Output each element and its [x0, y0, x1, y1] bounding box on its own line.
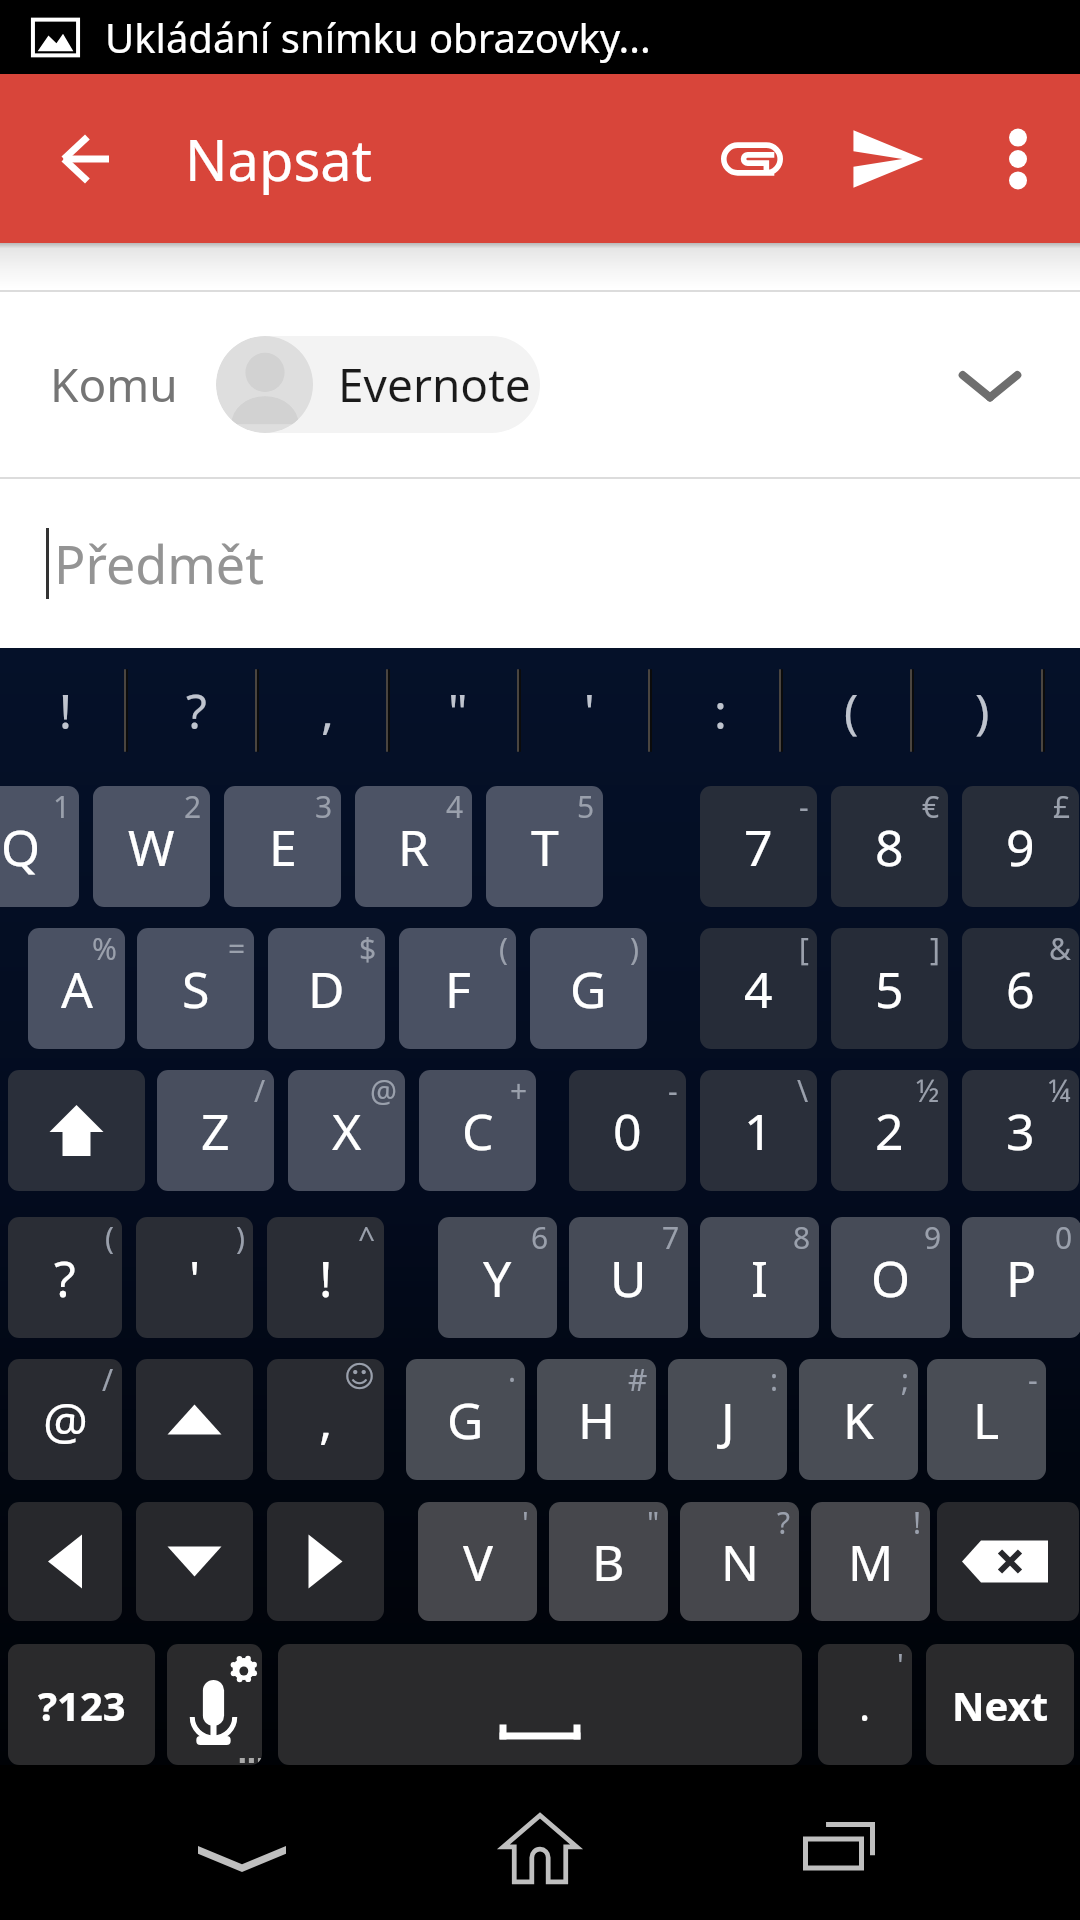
button[interactable]: , — [265, 648, 389, 773]
staticText: ^ — [358, 1217, 376, 1258]
button[interactable]: \ — [700, 1070, 817, 1191]
button[interactable]: 8 — [700, 1217, 819, 1338]
button[interactable]: ' — [418, 1502, 537, 1621]
button[interactable]: 3 — [224, 786, 341, 907]
button[interactable]: shift — [8, 1070, 145, 1191]
button[interactable]: ?123 — [8, 1644, 155, 1765]
staticText: , — [319, 1386, 333, 1454]
button[interactable]: ! — [3, 648, 127, 773]
button[interactable]: ? — [680, 1502, 799, 1621]
button[interactable]: ! — [811, 1502, 930, 1621]
button[interactable]: % — [28, 928, 125, 1049]
button[interactable]: space — [278, 1644, 802, 1765]
staticText: ! — [319, 1244, 333, 1312]
button[interactable]: £ — [962, 786, 1079, 907]
staticText: + — [510, 1070, 528, 1111]
button[interactable]: Attach — [684, 74, 820, 243]
staticText: 3 — [315, 786, 333, 827]
button[interactable]: 6 — [438, 1217, 557, 1338]
button[interactable]: # — [537, 1359, 656, 1480]
button[interactable]: : — [658, 648, 782, 773]
staticText: O — [871, 1244, 911, 1312]
staticText: @ — [370, 1070, 397, 1111]
staticText: ? — [777, 1502, 791, 1543]
button[interactable]: 2 — [93, 786, 210, 907]
staticText: ¼ — [1048, 1070, 1071, 1111]
staticText: / — [254, 1070, 266, 1111]
staticText: 8 — [875, 813, 904, 881]
staticText: 3 — [1006, 1097, 1035, 1165]
staticText: 0 — [613, 1097, 642, 1165]
staticText: 4 — [744, 955, 773, 1023]
button[interactable]: - — [927, 1359, 1046, 1480]
button[interactable]: $ — [268, 928, 385, 1049]
button[interactable]: Hide keyboard — [155, 1765, 330, 1920]
button[interactable]: " — [549, 1502, 668, 1621]
button[interactable]: down — [136, 1502, 253, 1621]
button[interactable]: Home — [450, 1765, 630, 1920]
button[interactable]: 7 — [569, 1217, 688, 1338]
button[interactable]: 4 — [355, 786, 472, 907]
button[interactable]: ) — [136, 1217, 253, 1338]
button[interactable]: ( — [399, 928, 516, 1049]
button[interactable]: ¼ — [962, 1070, 1079, 1191]
staticText: 6 — [531, 1217, 549, 1258]
button[interactable]: - — [700, 786, 817, 907]
button[interactable]: ' — [818, 1644, 912, 1765]
staticText: " — [647, 1502, 660, 1543]
button[interactable]: left — [8, 1502, 122, 1621]
button[interactable]: : — [668, 1359, 787, 1480]
staticText: Q — [1, 813, 41, 881]
button[interactable]: More options — [956, 74, 1080, 243]
staticText: · — [508, 1359, 517, 1400]
button[interactable]: 1 — [0, 786, 79, 907]
staticText: P — [1006, 1244, 1037, 1312]
button[interactable]: Send — [820, 74, 956, 243]
button[interactable]: Evernote — [216, 336, 540, 433]
button[interactable]: = — [137, 928, 254, 1049]
button[interactable]: / — [8, 1359, 122, 1480]
button[interactable]: up — [136, 1359, 253, 1480]
button[interactable]: Recent apps — [760, 1765, 940, 1920]
button[interactable]: € — [831, 786, 948, 907]
button[interactable]: mic — [167, 1644, 262, 1765]
button[interactable]: Předmět — [0, 479, 1080, 648]
button[interactable]: - — [569, 1070, 686, 1191]
button[interactable]: Expand recipients — [930, 292, 1050, 477]
button[interactable]: ( — [789, 648, 913, 773]
button[interactable]: + — [419, 1070, 536, 1191]
staticText: F — [445, 955, 471, 1023]
button[interactable]: & — [962, 928, 1079, 1049]
button[interactable]: ) — [920, 648, 1044, 773]
button[interactable]: ? — [134, 648, 258, 773]
button[interactable]: ☺ — [267, 1359, 384, 1480]
button[interactable]: @ — [288, 1070, 405, 1191]
button[interactable]: / — [157, 1070, 274, 1191]
button[interactable]: right — [267, 1502, 384, 1621]
staticText: ?123 — [38, 1678, 126, 1732]
staticText: 1 — [744, 1097, 773, 1165]
button[interactable]: ] — [831, 928, 948, 1049]
button[interactable]: [ — [700, 928, 817, 1049]
button[interactable]: · — [406, 1359, 525, 1480]
button[interactable]: ; — [799, 1359, 918, 1480]
button[interactable]: ' — [527, 648, 651, 773]
button[interactable]: Next — [926, 1644, 1074, 1765]
button[interactable]: " — [396, 648, 520, 773]
button[interactable]: Back — [0, 74, 185, 243]
staticText: R — [398, 813, 430, 881]
button[interactable]: bksp — [937, 1502, 1079, 1621]
staticText: ' — [189, 1244, 201, 1312]
staticText: £ — [1053, 786, 1071, 827]
button[interactable]: 5 — [486, 786, 603, 907]
staticText: ☺ — [344, 1359, 376, 1394]
button[interactable]: Komu — [0, 292, 1080, 477]
button[interactable]: 0 — [962, 1217, 1080, 1338]
staticText: Evernote — [338, 353, 531, 416]
button[interactable]: ½ — [831, 1070, 948, 1191]
button[interactable]: ( — [8, 1217, 122, 1338]
button[interactable]: ^ — [267, 1217, 384, 1338]
button[interactable]: ) — [530, 928, 647, 1049]
button[interactable]: 9 — [831, 1217, 950, 1338]
staticText: ! — [913, 1502, 922, 1543]
